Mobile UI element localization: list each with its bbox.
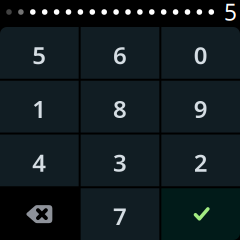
button[interactable]: 2 [161, 134, 240, 186]
button[interactable]: 7 [81, 188, 159, 240]
button[interactable]: Confirm passcode [161, 188, 240, 240]
staticText: 9 [194, 93, 208, 125]
staticText: 5 [224, 0, 237, 27]
button[interactable]: 6 [81, 27, 159, 79]
button[interactable]: 5 [0, 27, 79, 79]
button[interactable]: 1 [0, 81, 79, 133]
button[interactable]: Delete [0, 188, 79, 240]
staticText: 4 [32, 146, 46, 178]
button[interactable]: 8 [81, 81, 159, 133]
button[interactable]: 3 [81, 134, 159, 186]
button[interactable]: 4 [0, 134, 79, 186]
staticText: 0 [194, 39, 208, 71]
staticText: 8 [113, 93, 127, 125]
staticText: 5 [32, 39, 46, 71]
button[interactable]: 9 [161, 81, 240, 133]
staticText: 6 [113, 39, 127, 71]
staticText: 1 [32, 93, 46, 125]
staticText: 7 [113, 200, 127, 232]
staticText: 3 [113, 146, 127, 178]
button[interactable]: 0 [161, 27, 240, 79]
staticText: 2 [194, 146, 208, 178]
